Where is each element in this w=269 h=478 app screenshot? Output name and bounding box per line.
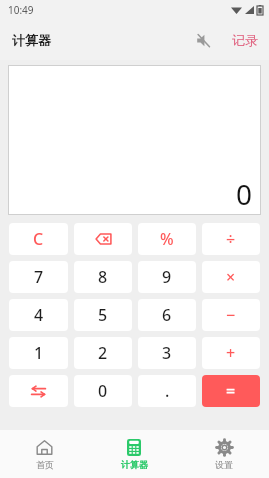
staticText: .	[165, 380, 170, 402]
staticText: −	[226, 304, 236, 326]
staticText: 9	[162, 266, 172, 288]
staticText: 3	[162, 342, 172, 364]
staticText: %	[160, 228, 174, 250]
staticText: ×	[226, 266, 236, 288]
button[interactable]: Backspace	[74, 223, 132, 255]
button[interactable]: 9	[138, 261, 196, 293]
staticText: 计算器	[12, 32, 51, 48]
staticText: 5	[98, 304, 108, 326]
button[interactable]: Swap	[9, 375, 68, 407]
staticText: ÷	[226, 228, 236, 250]
button[interactable]: 8	[74, 261, 132, 293]
button[interactable]: .	[138, 375, 196, 407]
staticText: 记录	[232, 32, 258, 48]
button[interactable]: 设置	[179, 430, 269, 478]
button[interactable]: ÷	[202, 223, 260, 255]
button[interactable]: %	[138, 223, 196, 255]
staticText: 设置	[215, 459, 233, 470]
staticText: =	[226, 380, 236, 402]
staticText: 首页	[36, 459, 54, 470]
button[interactable]: ×	[202, 261, 260, 293]
staticText: 10:49	[8, 3, 34, 17]
button[interactable]: +	[202, 337, 260, 369]
staticText: C	[33, 228, 44, 250]
button[interactable]: 4	[9, 299, 68, 331]
button[interactable]: =	[202, 375, 260, 407]
staticText: 6	[162, 304, 172, 326]
button[interactable]: 5	[74, 299, 132, 331]
button[interactable]: 3	[138, 337, 196, 369]
button[interactable]: 计算器	[89, 430, 179, 478]
staticText: 4	[34, 304, 44, 326]
button[interactable]: 7	[9, 261, 68, 293]
staticText: 1	[34, 342, 44, 364]
staticText: +	[226, 342, 236, 364]
staticText: 7	[34, 266, 44, 288]
button[interactable]: 6	[138, 299, 196, 331]
staticText: 8	[98, 266, 108, 288]
staticText: 计算器	[121, 459, 148, 470]
button[interactable]: −	[202, 299, 260, 331]
staticText: 2	[98, 342, 108, 364]
staticText: 0	[98, 380, 108, 402]
button[interactable]: 首页	[0, 430, 89, 478]
button[interactable]: C	[9, 223, 68, 255]
staticText: 0	[236, 175, 253, 213]
button[interactable]: 2	[74, 337, 132, 369]
button[interactable]: 记录	[221, 24, 269, 56]
button[interactable]: 1	[9, 337, 68, 369]
button[interactable]: 0	[74, 375, 132, 407]
button[interactable]: Mute	[185, 22, 221, 58]
